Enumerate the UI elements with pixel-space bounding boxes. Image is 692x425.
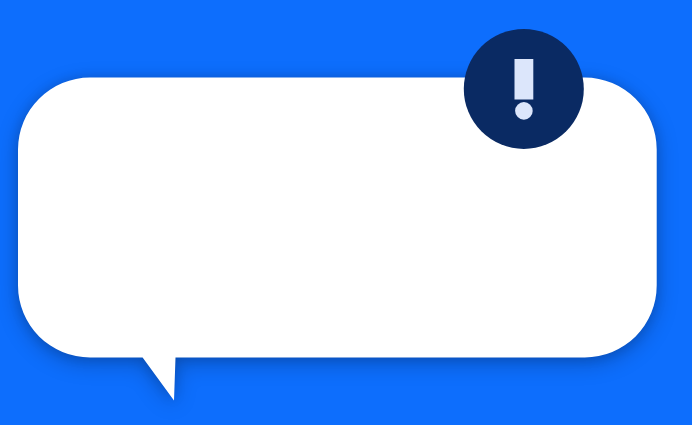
- button[interactable]: Alert message bubble: [0, 0, 692, 425]
- button[interactable]: Warning: [464, 29, 584, 149]
